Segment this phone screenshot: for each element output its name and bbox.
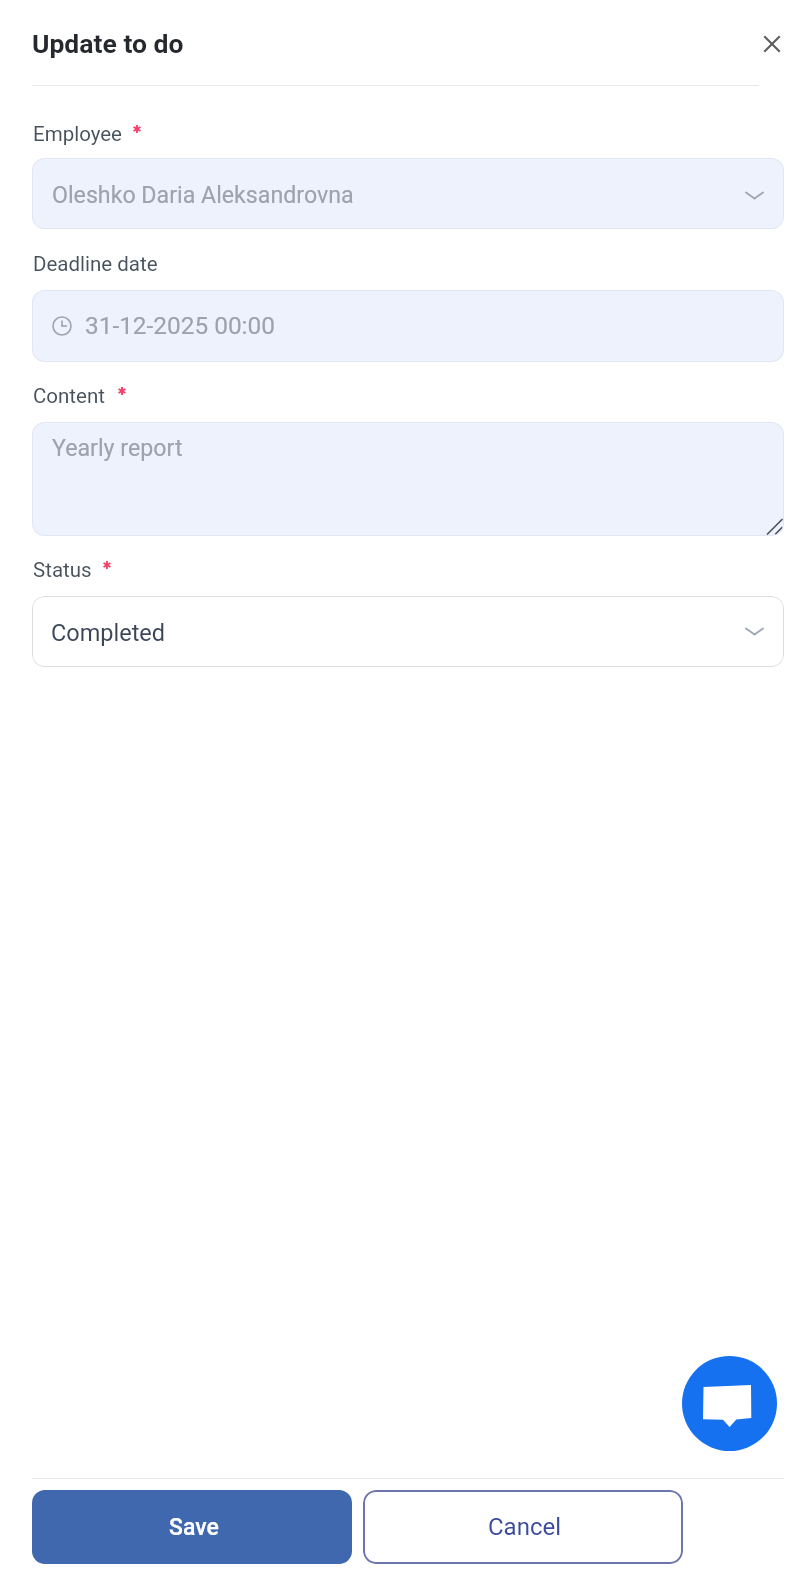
staticText: Completed bbox=[51, 619, 166, 647]
button[interactable]: Open chat bbox=[682, 1356, 777, 1451]
staticText: Update to do bbox=[32, 28, 184, 59]
staticText: Status bbox=[33, 558, 92, 582]
button[interactable]: Completed bbox=[32, 596, 784, 667]
button[interactable]: Yearly report bbox=[32, 422, 784, 536]
staticText: Yearly report bbox=[52, 434, 183, 461]
staticText: Save bbox=[169, 1514, 219, 1541]
staticText: Employee bbox=[33, 122, 122, 146]
button[interactable]: 31-12-2025 00:00 bbox=[32, 290, 784, 362]
button[interactable]: Save bbox=[32, 1490, 352, 1564]
button[interactable]: Oleshko Daria Aleksandrovna bbox=[32, 158, 784, 229]
staticText: 31-12-2025 00:00 bbox=[85, 311, 275, 340]
button[interactable]: Close bbox=[748, 20, 796, 68]
staticText: Content bbox=[33, 384, 105, 408]
button[interactable]: Cancel bbox=[363, 1490, 683, 1564]
staticText: Oleshko Daria Aleksandrovna bbox=[52, 181, 354, 208]
staticText: Cancel bbox=[488, 1513, 562, 1541]
staticText: Deadline date bbox=[33, 252, 158, 276]
